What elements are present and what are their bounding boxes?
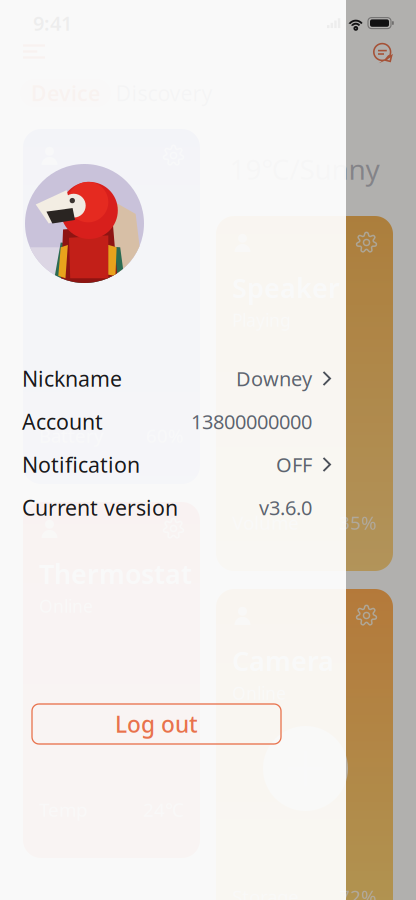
staticText: Current version <box>22 493 178 522</box>
staticText: OFF <box>276 451 312 478</box>
staticText: Account <box>22 407 103 436</box>
staticText: 72% <box>339 884 377 900</box>
staticText: Online <box>39 221 93 244</box>
staticText: Battery <box>39 423 104 448</box>
button[interactable]: Add device <box>263 726 348 811</box>
button[interactable]: Speaker <box>216 216 393 571</box>
staticText: 13800000000 <box>191 408 312 435</box>
button[interactable]: Light <box>23 129 200 484</box>
button[interactable]: Nickname <box>0 357 346 400</box>
button[interactable]: Messages <box>373 43 393 63</box>
button[interactable]: Menu <box>23 44 45 59</box>
staticText: Light <box>39 183 107 218</box>
button[interactable]: Current version <box>0 486 346 529</box>
staticText: Log out <box>115 709 198 739</box>
staticText: Speaker <box>232 270 340 305</box>
staticText: 19℃/Sunny <box>229 150 379 188</box>
staticText: Online <box>232 681 286 704</box>
staticText: 35% <box>339 510 377 535</box>
button[interactable]: Account <box>0 400 346 443</box>
staticText: Camera <box>232 643 334 678</box>
staticText: Nickname <box>22 364 122 393</box>
button[interactable]: Thermostat <box>23 502 200 858</box>
staticText: Downey <box>236 365 312 392</box>
button[interactable]: Notification <box>0 443 346 486</box>
button[interactable]: Camera <box>216 589 393 900</box>
staticText: v3.6.0 <box>259 494 312 521</box>
staticText: Notification <box>22 450 140 479</box>
button[interactable]: Log out <box>32 704 281 744</box>
staticText: 9:41 <box>33 10 72 36</box>
staticText: Volume <box>232 510 299 535</box>
